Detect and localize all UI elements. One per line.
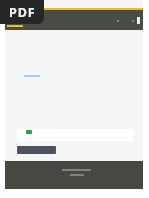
button[interactable] — [17, 146, 56, 154]
button[interactable] — [17, 129, 133, 141]
button[interactable]: PDF — [0, 0, 44, 24]
staticText: PDF — [9, 4, 36, 21]
